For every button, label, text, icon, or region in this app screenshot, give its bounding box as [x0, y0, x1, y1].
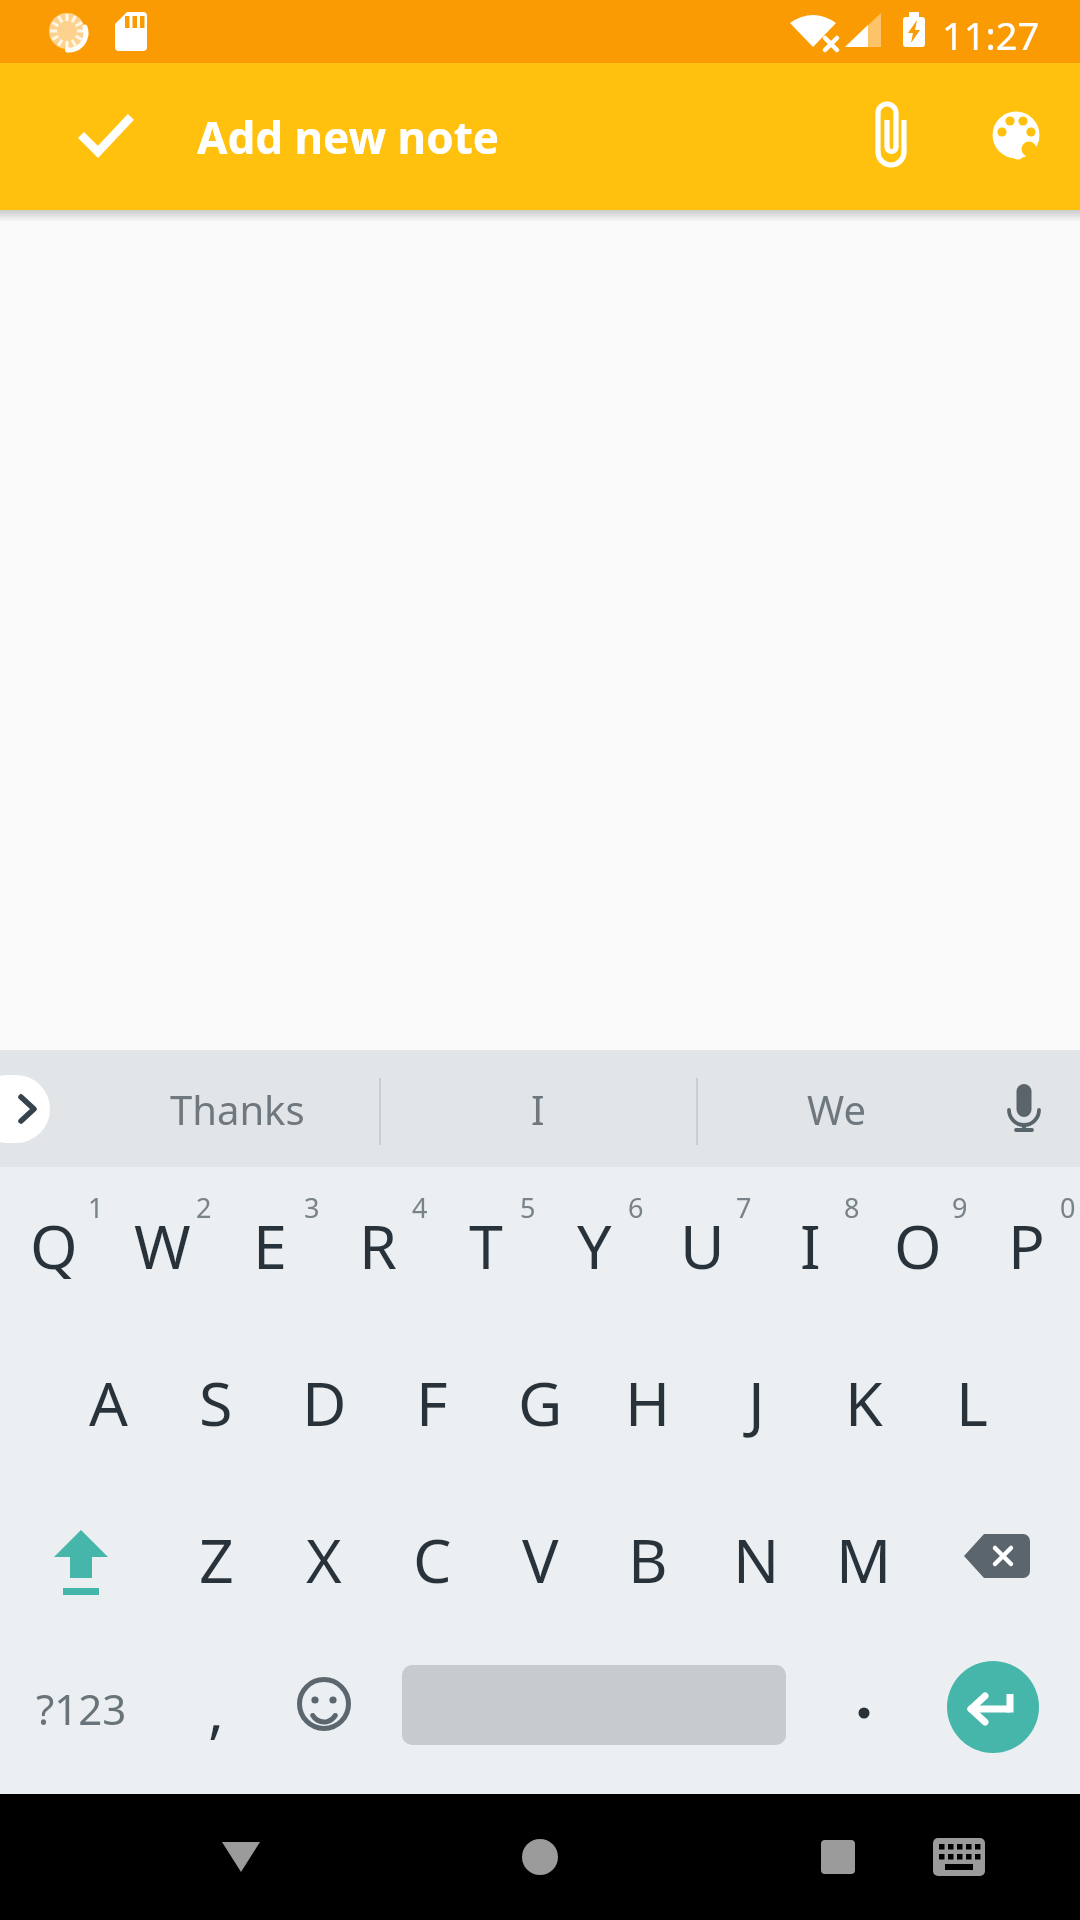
button[interactable]: Q: [0, 1167, 108, 1324]
button[interactable]: We: [736, 1050, 936, 1167]
button[interactable]: X: [270, 1481, 378, 1638]
staticText: U: [680, 1204, 725, 1287]
button[interactable]: [810, 1638, 918, 1794]
button[interactable]: C: [378, 1481, 486, 1638]
button[interactable]: M: [810, 1481, 918, 1638]
button[interactable]: F: [378, 1324, 486, 1481]
button[interactable]: V: [486, 1481, 594, 1638]
staticText: I: [531, 1082, 545, 1136]
button[interactable]: [193, 1809, 289, 1905]
staticText: Thanks: [170, 1082, 305, 1136]
staticText: Y: [577, 1204, 612, 1287]
staticText: L: [956, 1361, 988, 1444]
button[interactable]: [378, 1638, 810, 1794]
button[interactable]: [270, 1638, 378, 1794]
staticText: T: [469, 1204, 503, 1287]
button[interactable]: Y: [540, 1167, 648, 1324]
button[interactable]: ,: [162, 1638, 270, 1794]
staticText: V: [522, 1518, 559, 1601]
staticText: 6: [628, 1189, 644, 1226]
staticText: N: [733, 1518, 780, 1601]
staticText: K: [845, 1361, 883, 1444]
staticText: F: [416, 1361, 448, 1444]
staticText: 5: [520, 1189, 536, 1226]
button[interactable]: ?123: [0, 1638, 162, 1794]
button[interactable]: S: [162, 1324, 270, 1481]
button[interactable]: T: [432, 1167, 540, 1324]
staticText: E: [253, 1204, 287, 1287]
staticText: J: [748, 1361, 765, 1444]
button[interactable]: W: [108, 1167, 216, 1324]
button[interactable]: [911, 1809, 1007, 1905]
staticText: Z: [199, 1518, 234, 1601]
staticText: I: [800, 1204, 821, 1287]
button[interactable]: N: [702, 1481, 810, 1638]
staticText: 3: [304, 1189, 320, 1226]
staticText: S: [199, 1361, 233, 1444]
button[interactable]: Thanks: [137, 1050, 337, 1167]
staticText: C: [413, 1518, 452, 1601]
button[interactable]: I: [438, 1050, 638, 1167]
button[interactable]: [843, 87, 939, 183]
button[interactable]: [0, 1481, 162, 1638]
staticText: 11:27: [942, 9, 1040, 61]
staticText: ,: [208, 1668, 225, 1750]
staticText: O: [894, 1204, 942, 1287]
button[interactable]: K: [810, 1324, 918, 1481]
staticText: R: [359, 1204, 397, 1287]
staticText: X: [306, 1518, 342, 1601]
button[interactable]: P: [972, 1167, 1080, 1324]
button[interactable]: L: [918, 1324, 1026, 1481]
button[interactable]: G: [486, 1324, 594, 1481]
button[interactable]: I: [756, 1167, 864, 1324]
button[interactable]: [492, 1809, 588, 1905]
staticText: P: [1008, 1204, 1045, 1287]
button[interactable]: E: [216, 1167, 324, 1324]
button[interactable]: H: [594, 1324, 702, 1481]
staticText: 9: [952, 1189, 968, 1226]
button[interactable]: [918, 1481, 1080, 1638]
button[interactable]: [968, 89, 1064, 185]
staticText: 1: [88, 1189, 104, 1226]
staticText: Q: [30, 1204, 78, 1287]
staticText: B: [628, 1518, 668, 1601]
staticText: We: [807, 1082, 866, 1136]
button[interactable]: Z: [162, 1481, 270, 1638]
staticText: A: [89, 1361, 128, 1444]
staticText: H: [625, 1361, 671, 1444]
staticText: 4: [412, 1189, 428, 1226]
button[interactable]: R: [324, 1167, 432, 1324]
staticText: M: [836, 1518, 892, 1601]
staticText: G: [518, 1361, 563, 1444]
staticText: ?123: [36, 1680, 127, 1737]
staticText: 8: [844, 1189, 860, 1226]
button[interactable]: U: [648, 1167, 756, 1324]
staticText: 7: [736, 1189, 752, 1226]
button[interactable]: [790, 1809, 886, 1905]
button[interactable]: B: [594, 1481, 702, 1638]
button[interactable]: [918, 1638, 1080, 1794]
staticText: Add new note: [197, 107, 500, 167]
staticText: 2: [196, 1189, 212, 1226]
button[interactable]: J: [702, 1324, 810, 1481]
button[interactable]: [56, 89, 152, 185]
button[interactable]: O: [864, 1167, 972, 1324]
staticText: 0: [1060, 1189, 1076, 1226]
staticText: D: [302, 1361, 347, 1444]
button[interactable]: A: [54, 1324, 162, 1481]
button[interactable]: D: [270, 1324, 378, 1481]
staticText: W: [134, 1204, 191, 1287]
